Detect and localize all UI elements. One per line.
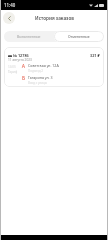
staticText: Советская ул. 12А (28, 63, 59, 68)
button[interactable]: № 12786 (4, 47, 104, 87)
button[interactable]: Отмененные (54, 31, 104, 42)
staticText: 11 августа 2023 (8, 58, 32, 62)
staticText: А (19, 63, 28, 70)
staticText: История заказов (35, 15, 74, 21)
staticText: Отмененные (68, 34, 90, 39)
staticText: 11:40 (4, 2, 16, 8)
staticText: Выполненные (17, 34, 41, 39)
staticText: Гагарина ул. 3 (28, 75, 53, 80)
staticText: № 12786 (13, 53, 29, 58)
button[interactable]: Выполненные (4, 31, 54, 42)
staticText: Подъезд 2 (28, 69, 44, 73)
staticText: Тариф (8, 70, 18, 74)
staticText: 321 ₽ (90, 53, 100, 58)
staticText: Б (19, 75, 28, 82)
staticText: 14:05 (8, 65, 16, 69)
staticText: Вход с улицы (28, 81, 48, 85)
button[interactable]: Назад (3, 12, 15, 24)
